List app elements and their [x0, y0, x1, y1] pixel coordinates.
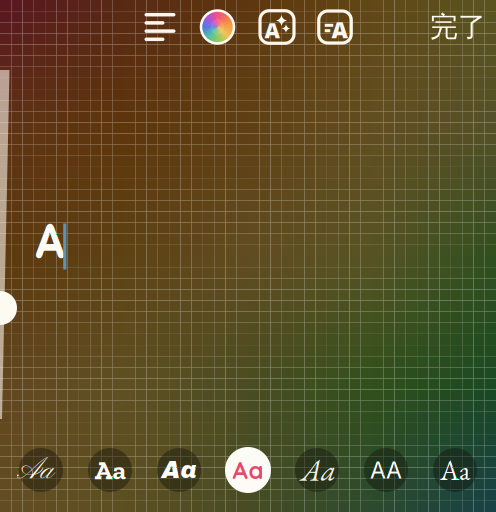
button[interactable]: Serif font [427, 442, 483, 498]
button[interactable]: Heavy font [151, 442, 207, 498]
staticText: Aa [440, 452, 470, 488]
button[interactable]: Text alignment [139, 5, 181, 49]
button[interactable]: Text style [314, 5, 356, 49]
staticText: Aa [232, 455, 263, 485]
button[interactable]: Script font [13, 442, 69, 498]
button[interactable]: Italic serif font [289, 442, 345, 498]
staticText: Aa [161, 457, 196, 483]
staticText: A [264, 16, 279, 44]
staticText: AA [370, 456, 402, 484]
staticText: A [331, 14, 347, 44]
button[interactable]: 完了 [425, 5, 491, 49]
staticText: Aa [16, 452, 53, 490]
staticText: A [32, 211, 68, 274]
button[interactable]: Classic font [358, 442, 414, 498]
staticText: 完了 [430, 10, 486, 44]
staticText: Aa [301, 450, 336, 490]
button[interactable]: Rounded font [220, 442, 276, 498]
button[interactable]: Text effects [256, 5, 298, 49]
button[interactable]: Slab font [82, 442, 138, 498]
button[interactable]: Text colour [196, 5, 238, 49]
staticText: Aa [94, 454, 125, 486]
